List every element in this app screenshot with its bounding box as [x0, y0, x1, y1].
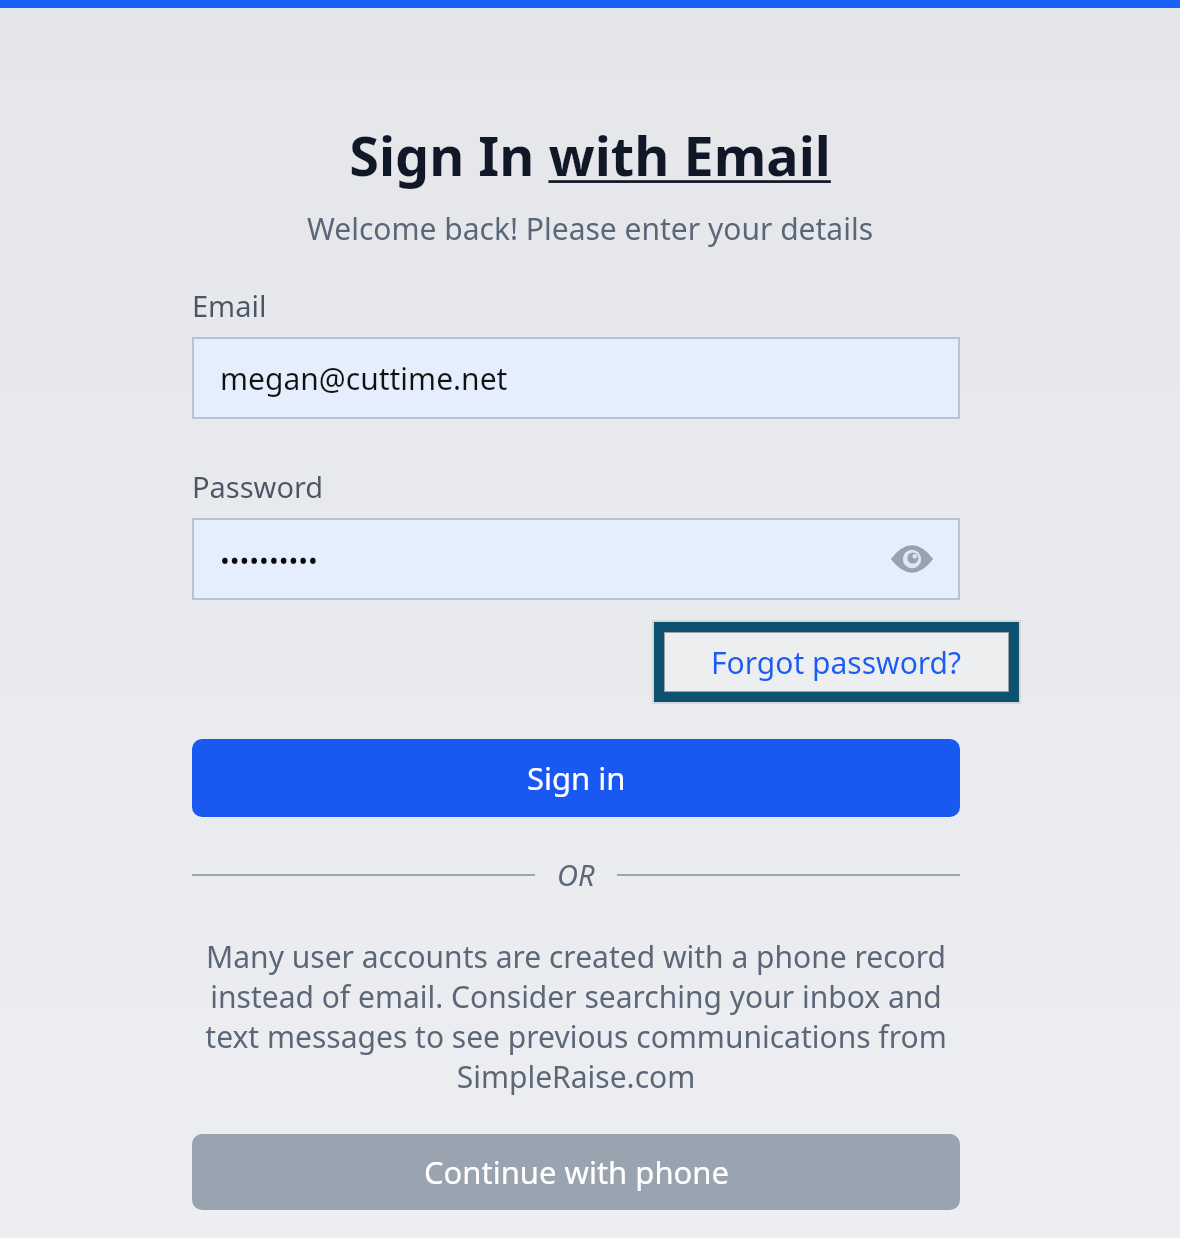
staticText: Forgot password? — [711, 642, 962, 683]
staticText: Email — [192, 286, 267, 325]
staticText: •••••••••• — [220, 542, 318, 577]
button[interactable]: megan@cuttime.net — [192, 337, 960, 419]
button[interactable]: Continue with phone — [192, 1134, 960, 1210]
staticText: Sign In with Email — [0, 118, 1180, 192]
button[interactable]: Forgot password? — [664, 632, 1009, 692]
staticText: Sign in — [527, 757, 626, 799]
button[interactable]: Show password — [888, 535, 936, 583]
staticText: Continue with phone — [424, 1151, 729, 1193]
staticText: Many user accounts are created with a ph… — [192, 936, 960, 1097]
button[interactable]: •••••••••• — [192, 518, 960, 600]
staticText: OR — [557, 855, 595, 894]
staticText: Password — [192, 467, 324, 506]
staticText: megan@cuttime.net — [220, 358, 508, 399]
button[interactable]: Sign in — [192, 739, 960, 817]
staticText: Welcome back! Please enter your details — [0, 208, 1180, 249]
